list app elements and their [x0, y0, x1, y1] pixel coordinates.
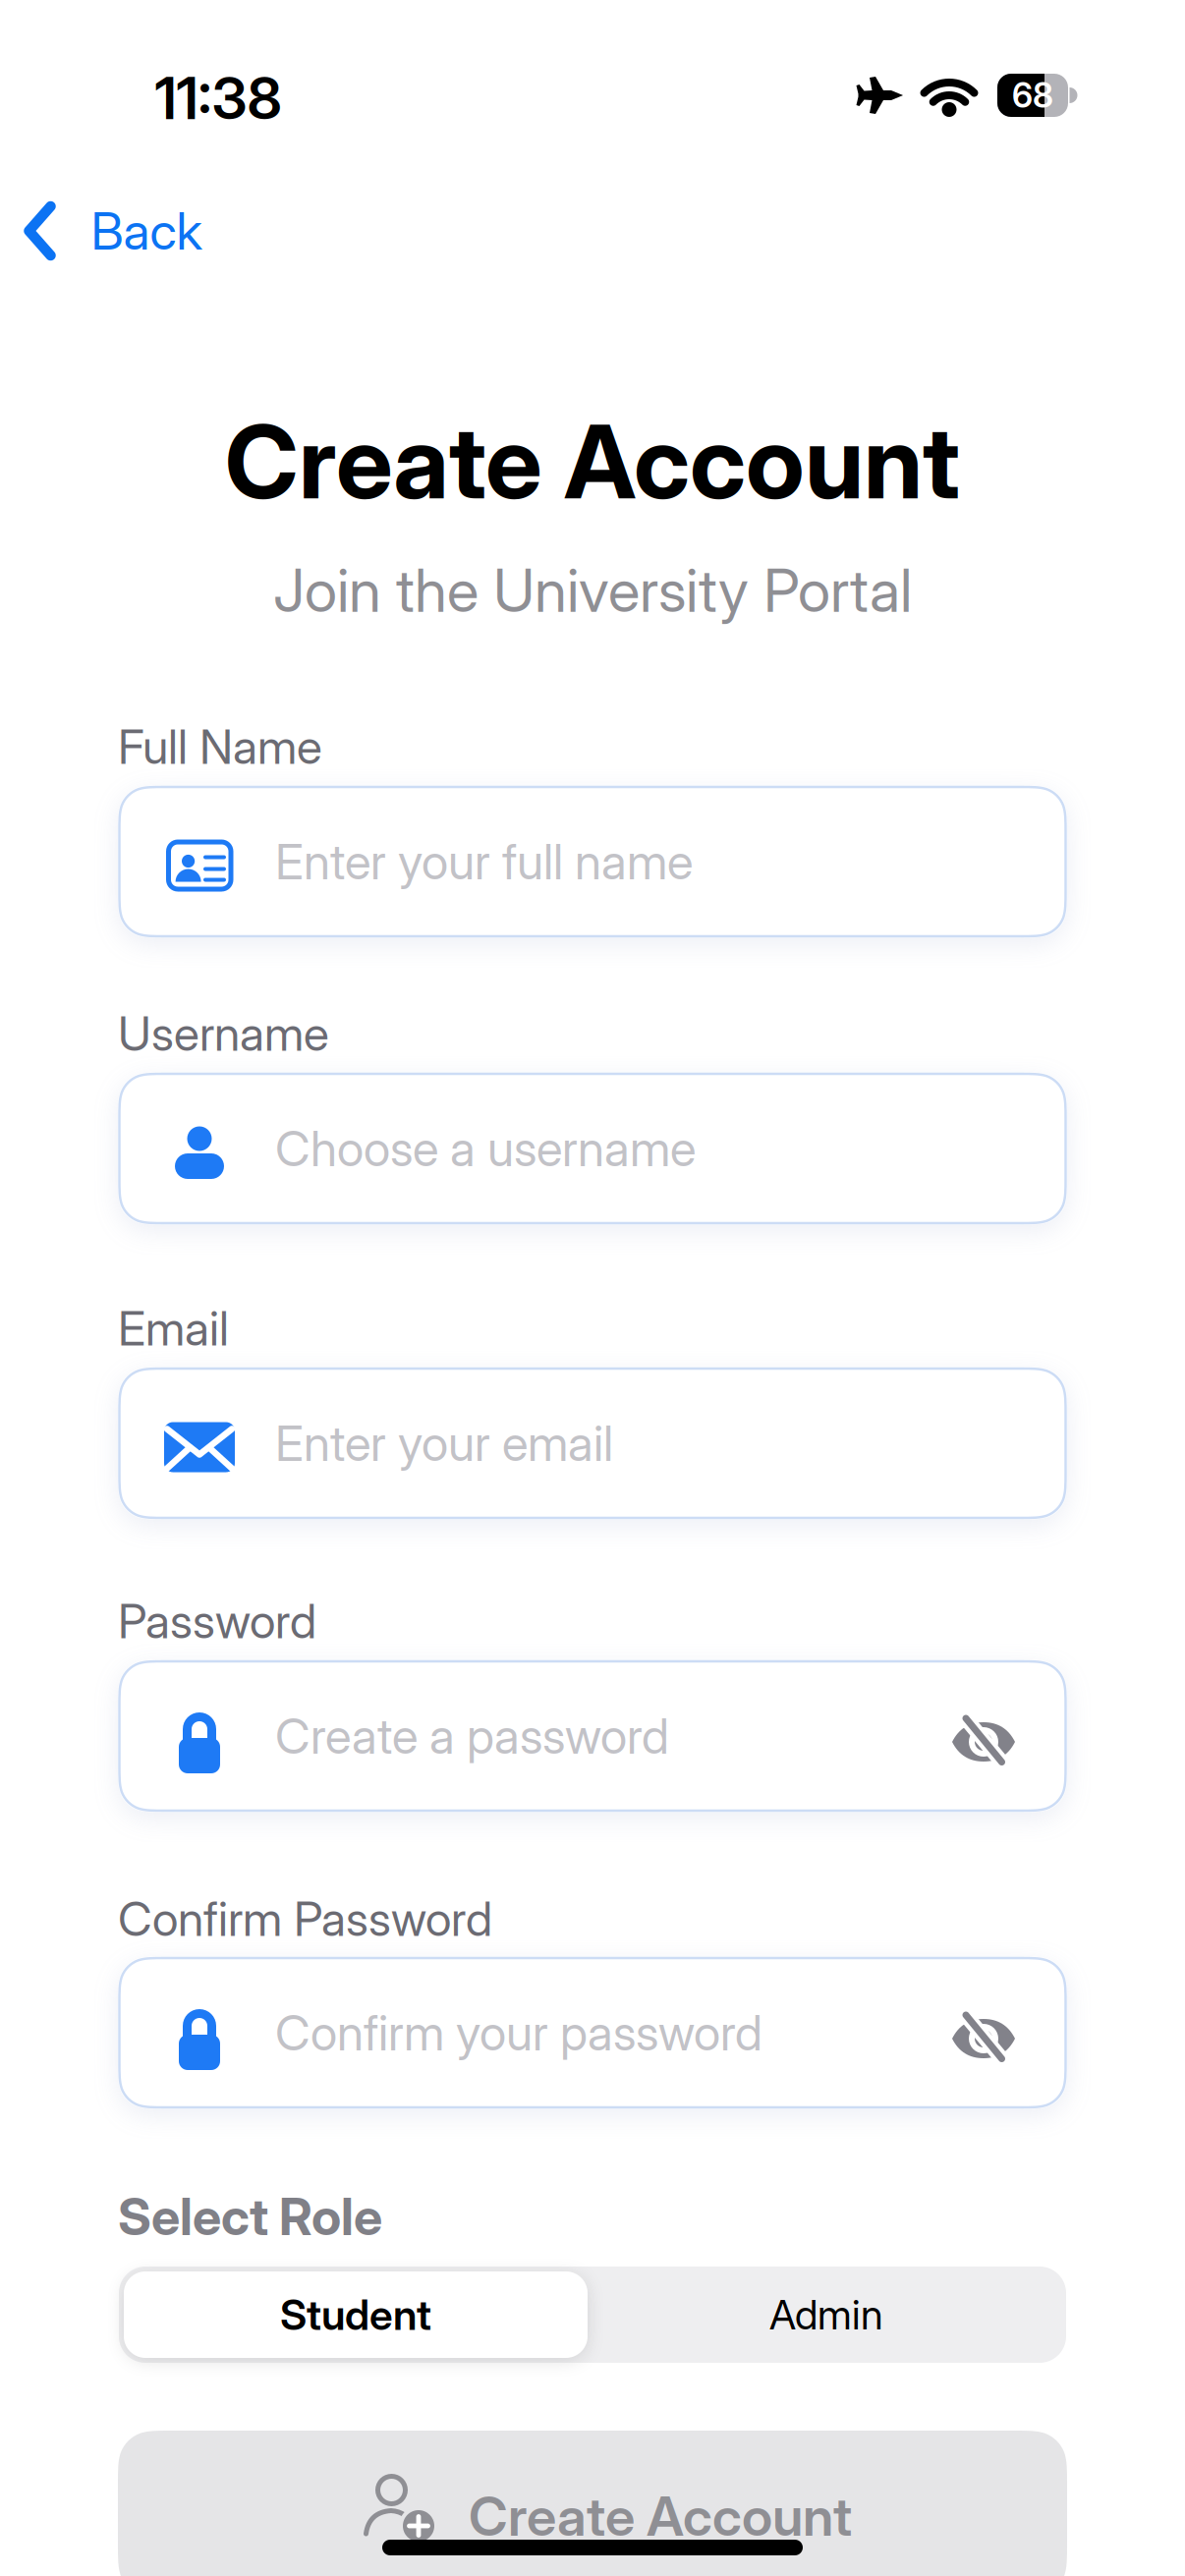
staticText: Create Account — [469, 2484, 852, 2548]
button[interactable]: Choose a username — [118, 1072, 1067, 1225]
button[interactable]: Student — [124, 2271, 588, 2358]
staticText: Full Name — [118, 719, 322, 774]
button[interactable]: Enter your full name — [118, 785, 1067, 938]
staticText: Join the University Portal — [273, 556, 912, 625]
button[interactable]: Confirm your password — [118, 1957, 1067, 2109]
staticText: Enter your email — [275, 1415, 613, 1472]
staticText: Admin — [769, 2291, 883, 2339]
staticText: 68 — [1012, 75, 1053, 115]
button[interactable]: Enter your email — [118, 1367, 1067, 1519]
button[interactable]: Create a password — [118, 1660, 1067, 1812]
button[interactable]: Create Account — [118, 2431, 1067, 2576]
staticText: Password — [118, 1593, 316, 1649]
button[interactable]: Admin — [594, 2271, 1058, 2358]
button[interactable] — [952, 1715, 1015, 1757]
staticText: Create Account — [225, 402, 960, 521]
button[interactable] — [952, 2012, 1015, 2053]
staticText: 11:38 — [155, 64, 282, 132]
staticText: Enter your full name — [275, 833, 693, 890]
staticText: Email — [118, 1300, 229, 1356]
button[interactable]: Back — [22, 201, 202, 261]
staticText: Create a password — [275, 1707, 669, 1765]
staticText: Student — [280, 2290, 431, 2339]
staticText: Confirm your password — [275, 2004, 762, 2061]
staticText: Choose a username — [275, 1120, 696, 1177]
staticText: Back — [91, 201, 202, 261]
staticText: Select Role — [118, 2186, 382, 2246]
staticText: Username — [118, 1006, 329, 1061]
staticText: Confirm Password — [118, 1891, 492, 1947]
